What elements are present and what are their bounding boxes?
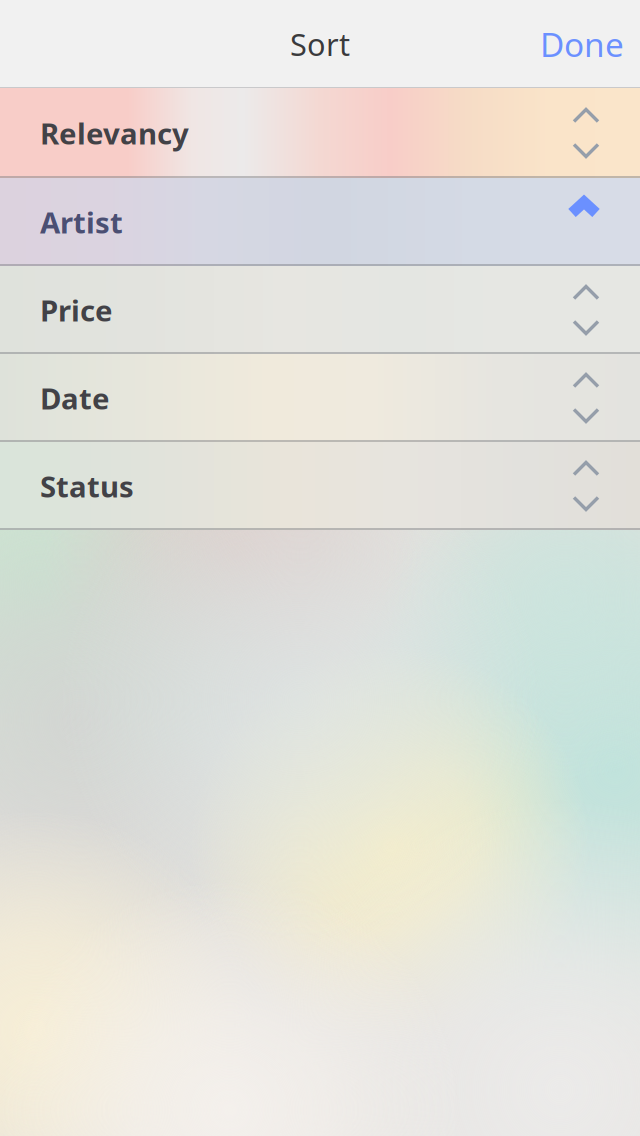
- staticText: Date: [40, 378, 110, 417]
- button[interactable]: Artist: [0, 178, 640, 266]
- button[interactable]: Price: [0, 266, 640, 354]
- button[interactable]: Done: [520, 0, 640, 88]
- staticText: Done: [540, 22, 624, 66]
- staticText: Artist: [40, 202, 123, 241]
- staticText: Sort: [290, 24, 350, 64]
- button[interactable]: Date: [0, 354, 640, 442]
- staticText: Price: [40, 290, 113, 329]
- staticText: Status: [40, 466, 134, 505]
- button[interactable]: Relevancy: [0, 88, 640, 178]
- button[interactable]: Status: [0, 442, 640, 530]
- staticText: Relevancy: [40, 113, 189, 152]
